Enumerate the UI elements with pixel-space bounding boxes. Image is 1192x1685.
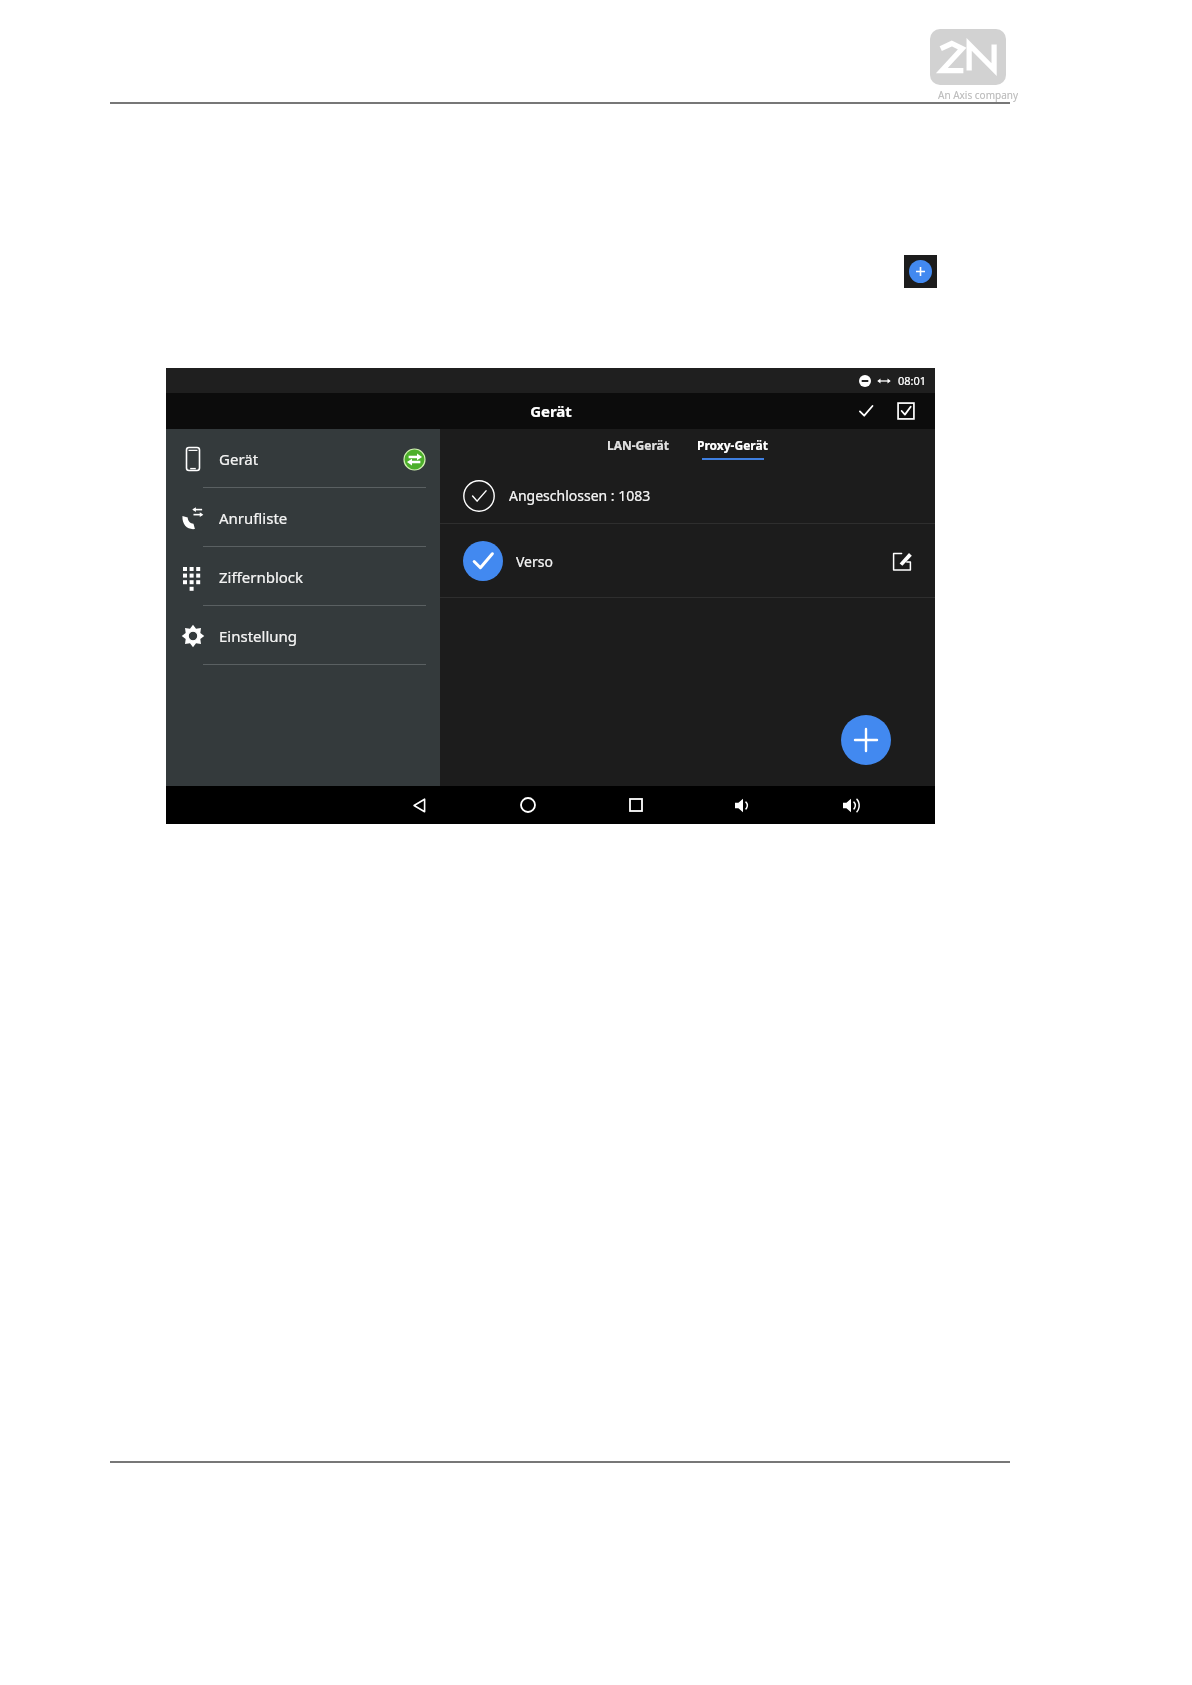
staticText: Proxy-Gerät — [697, 437, 768, 453]
staticText: Angeschlossen : 1083 — [509, 486, 651, 505]
button[interactable]: Sync — [402, 447, 426, 471]
button[interactable]: Ziffernblock — [166, 547, 440, 606]
staticText: Gerät — [219, 449, 259, 469]
button[interactable]: Select all — [891, 396, 921, 426]
button[interactable]: Proxy-Gerät — [689, 434, 776, 463]
staticText: Anrufliste — [219, 508, 288, 528]
button[interactable]: Add device — [841, 715, 891, 765]
button[interactable]: Back — [396, 786, 442, 824]
button[interactable]: Gerät — [166, 429, 440, 488]
staticText: Ziffernblock — [219, 567, 304, 587]
button[interactable]: Volume up — [829, 786, 875, 824]
button[interactable]: Recents — [613, 786, 659, 824]
button[interactable]: Angeschlossen : 1083 — [440, 467, 935, 524]
button[interactable]: LAN-Gerät — [599, 434, 677, 463]
button[interactable]: Add — [904, 255, 937, 288]
button[interactable]: Anrufliste — [166, 488, 440, 547]
staticText: Verso — [516, 552, 553, 571]
button[interactable]: Verso — [440, 524, 935, 598]
staticText: Einstellung — [219, 626, 298, 646]
button[interactable]: Edit — [887, 546, 917, 576]
staticText: LAN-Gerät — [607, 437, 669, 453]
staticText: An Axis company — [938, 88, 1019, 102]
button[interactable]: Einstellung — [166, 606, 440, 665]
button[interactable]: Confirm — [851, 396, 881, 426]
staticText: Gerät — [530, 401, 572, 421]
button[interactable]: Volume down — [721, 786, 767, 824]
button[interactable]: Home — [505, 786, 551, 824]
staticText: 08:01 — [898, 373, 927, 388]
